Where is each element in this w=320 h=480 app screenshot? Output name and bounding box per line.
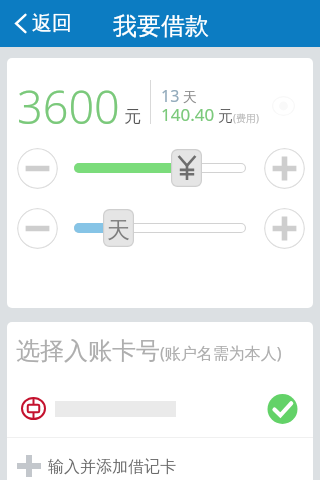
button[interactable]: Increase	[264, 208, 305, 249]
button[interactable]: Decrease	[17, 148, 58, 189]
staticText: 天	[107, 216, 130, 245]
staticText: 选择入账卡号	[16, 336, 160, 366]
staticText: 元	[218, 107, 233, 126]
button[interactable]: Slider handle	[171, 149, 202, 187]
staticText: 140.40	[161, 103, 215, 126]
button[interactable]: Increase	[264, 148, 305, 189]
staticText: 我要借款	[113, 11, 209, 41]
staticText: 返回	[32, 11, 72, 36]
staticText: (账户名需为本人)	[160, 342, 282, 364]
button[interactable]	[7, 383, 313, 434]
staticText: 天	[183, 89, 197, 107]
button[interactable]: Slider handle	[103, 209, 134, 247]
button[interactable]: 返回	[0, 5, 82, 42]
staticText: 13	[161, 85, 180, 107]
button[interactable]: 输入并添加借记卡	[7, 441, 313, 480]
button[interactable]: Decrease	[17, 208, 58, 249]
staticText: 3600	[17, 76, 120, 137]
staticText: 元	[124, 106, 141, 127]
staticText: 输入并添加借记卡	[48, 457, 176, 477]
staticText: (费用)	[233, 111, 259, 125]
